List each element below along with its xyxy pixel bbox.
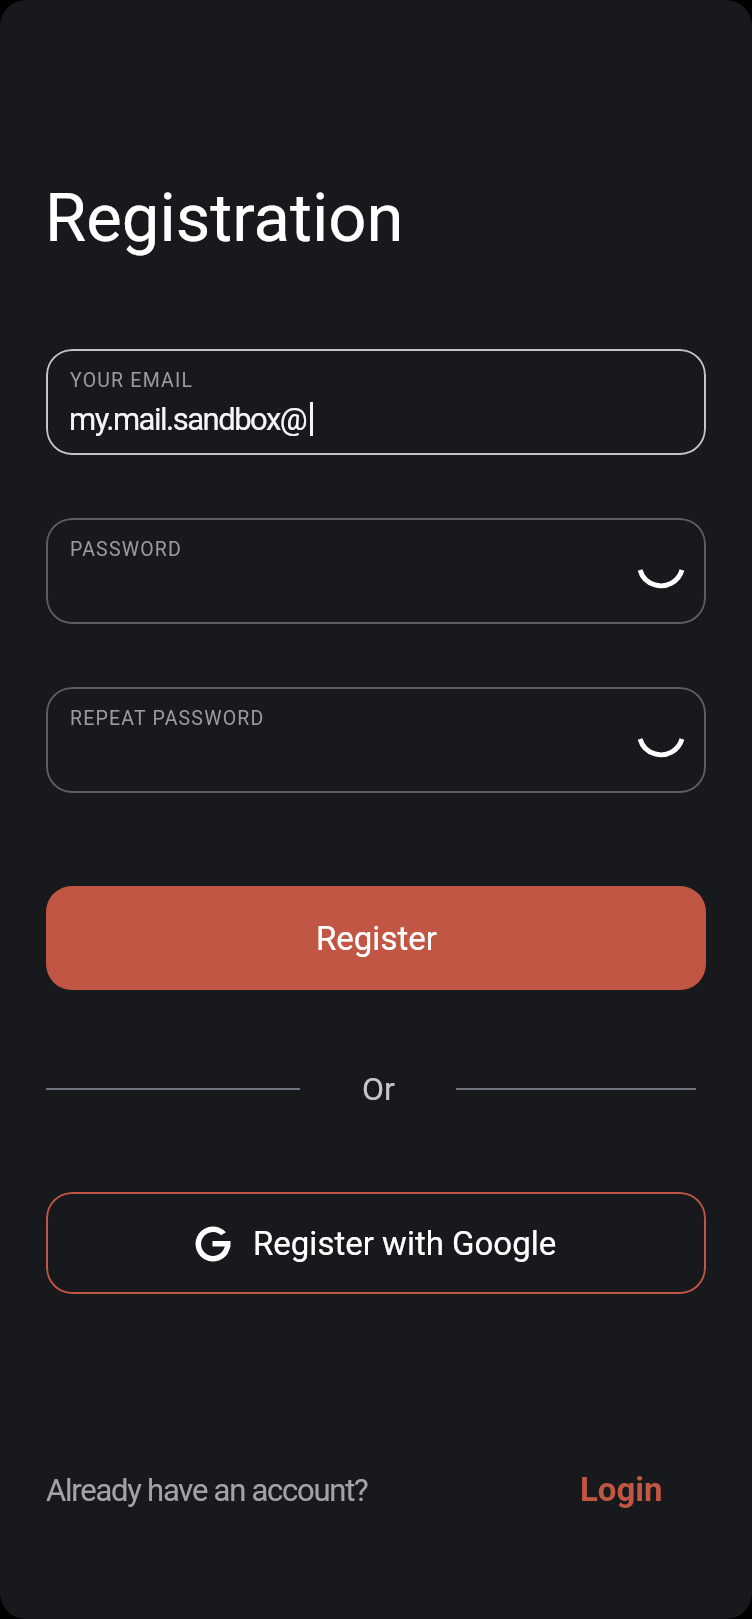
staticText: PASSWORD [70,538,182,561]
staticText: Already have an account? [46,1472,368,1508]
button[interactable]: YOUR EMAIL [46,349,706,455]
staticText: Register with Google [253,1224,557,1263]
button[interactable]: Register with Google [46,1192,706,1294]
staticText: Login [580,1470,663,1509]
staticText: my.mail.sandbox@ [69,401,307,437]
button[interactable]: Login [568,1462,675,1517]
staticText: YOUR EMAIL [70,369,194,392]
button[interactable]: REPEAT PASSWORD [46,687,706,793]
staticText: Or [362,1070,395,1108]
staticText: Register [316,919,437,958]
staticText: Registration [45,179,404,258]
button[interactable]: Show password [632,700,690,758]
button[interactable]: Register [46,886,706,990]
staticText: REPEAT PASSWORD [70,707,265,730]
button[interactable]: PASSWORD [46,518,706,624]
button[interactable]: Show password [632,531,690,589]
